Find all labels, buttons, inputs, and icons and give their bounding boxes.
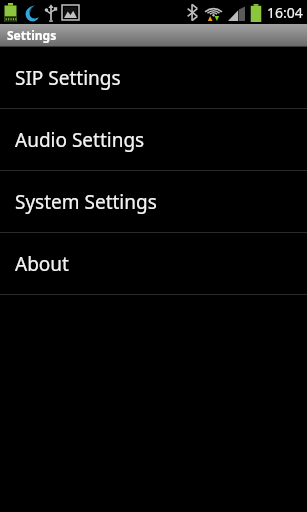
staticText: 16:04 [267,3,303,22]
button[interactable]: About [0,233,307,294]
staticText: System Settings [15,189,157,215]
staticText: Audio Settings [15,127,145,153]
button[interactable]: System Settings [0,171,307,232]
staticText: Settings [7,27,57,43]
button[interactable]: SIP Settings [0,47,307,108]
staticText: About [15,251,69,277]
button[interactable]: Audio Settings [0,109,307,170]
staticText: SIP Settings [15,65,121,91]
